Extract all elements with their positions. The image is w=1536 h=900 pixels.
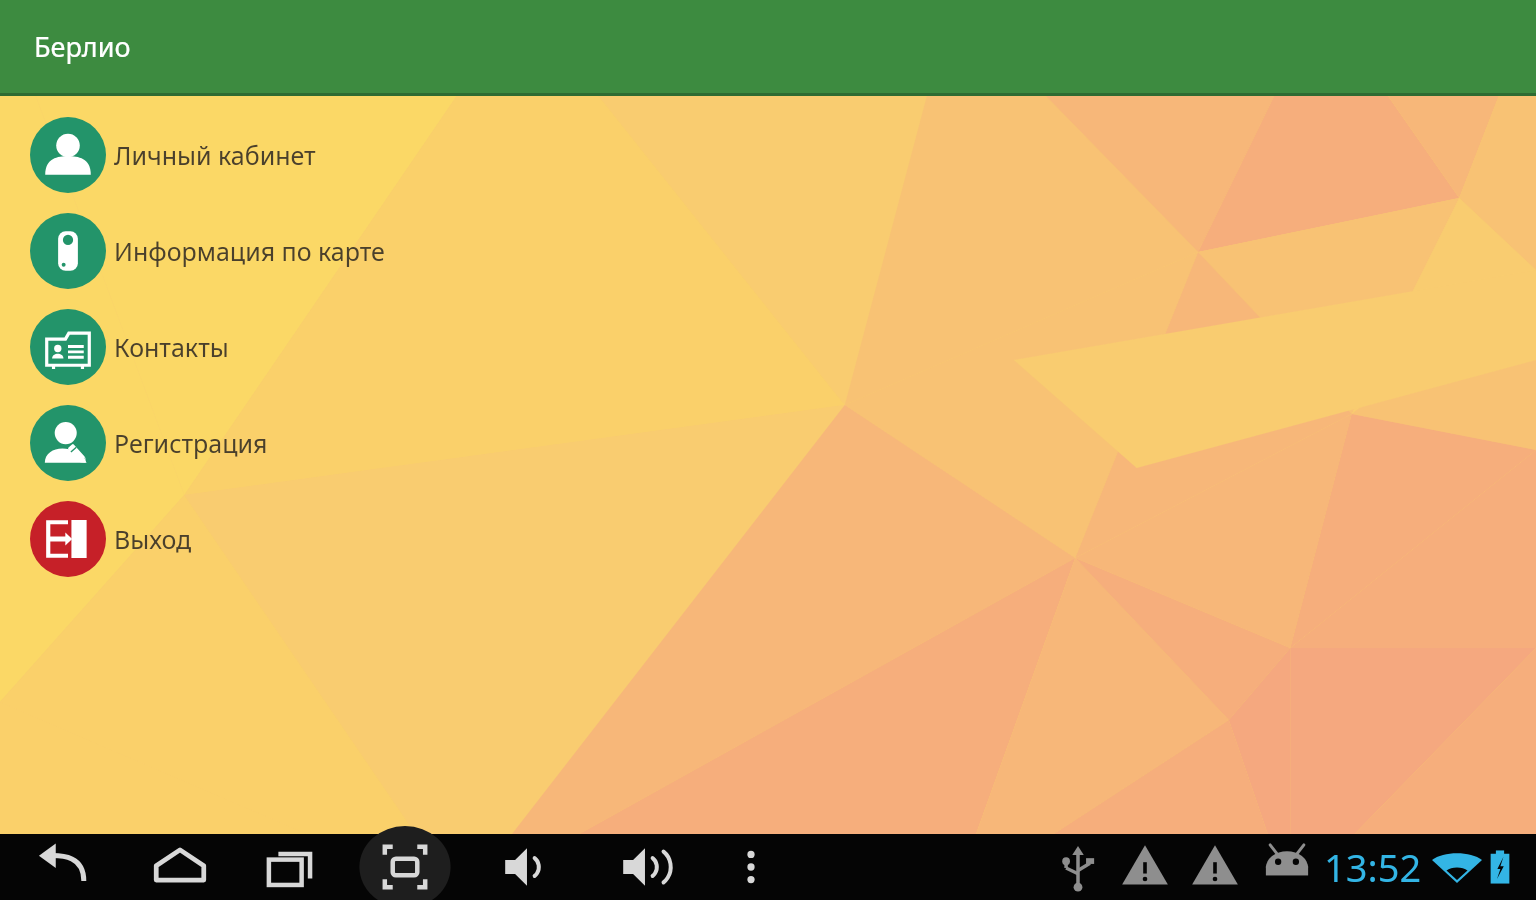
staticText: 13:52 [1324, 841, 1422, 893]
button[interactable]: Back [0, 834, 125, 900]
button[interactable]: Личный кабинет [0, 107, 1536, 203]
button[interactable]: Контакты [0, 299, 1536, 395]
button[interactable]: Recents [235, 834, 345, 900]
staticText: Личный кабинет [114, 138, 316, 172]
button[interactable]: Регистрация [0, 395, 1536, 491]
staticText: Берлио [34, 28, 131, 65]
button[interactable]: Home [125, 834, 235, 900]
staticText: Выход [114, 522, 192, 556]
button[interactable]: Screenshot [345, 834, 465, 900]
button[interactable]: Выход [0, 491, 1536, 587]
button[interactable]: Информация по карте [0, 203, 1536, 299]
button[interactable]: More options [701, 834, 801, 900]
button[interactable]: Volume down [465, 834, 583, 900]
staticText: Информация по карте [114, 234, 385, 268]
staticText: Контакты [114, 330, 229, 364]
staticText: Регистрация [114, 426, 268, 460]
button[interactable]: Volume up [583, 834, 701, 900]
